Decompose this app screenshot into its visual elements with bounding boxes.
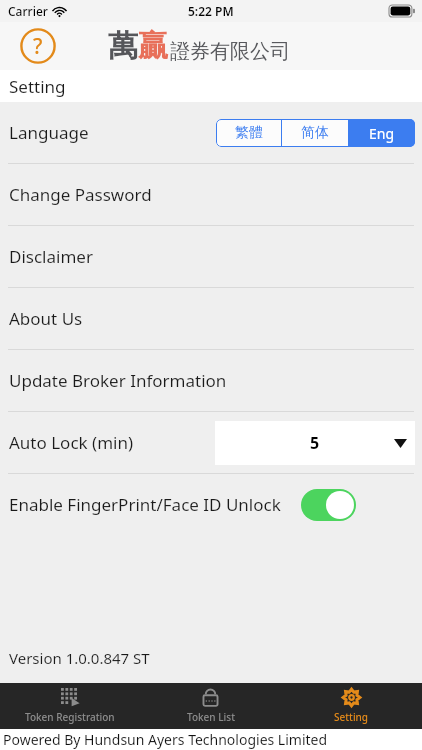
button[interactable]: Setting — [281, 683, 422, 729]
staticText: 繁體 — [235, 124, 263, 142]
staticText: Disclaimer — [9, 245, 93, 268]
staticText: Token List — [187, 710, 235, 724]
button[interactable]: 简体 — [282, 119, 348, 147]
button[interactable]: 5 — [215, 421, 415, 465]
staticText: 贏 — [138, 27, 168, 65]
button[interactable]: 繁體 — [216, 119, 281, 147]
staticText: 简体 — [301, 124, 329, 142]
staticText: 萬 — [108, 27, 138, 65]
staticText: Version 1.0.0.847 ST — [9, 648, 150, 668]
staticText: Token Registration — [25, 710, 115, 724]
staticText: Eng — [369, 124, 395, 143]
staticText: Setting — [334, 710, 369, 724]
staticText: 5 — [310, 432, 320, 454]
staticText: Powered By Hundsun Ayers Technologies Li… — [3, 730, 328, 749]
staticText: Carrier — [8, 3, 48, 19]
staticText: About Us — [9, 307, 83, 330]
button[interactable]: Token Registration — [0, 683, 140, 729]
staticText: Auto Lock (min) — [9, 431, 134, 454]
staticText: ? — [33, 32, 43, 61]
button[interactable]: Disclaimer — [0, 226, 422, 287]
staticText: 5:22 PM — [188, 3, 234, 19]
button[interactable]: Help — [20, 28, 56, 64]
staticText: Change Password — [9, 183, 152, 206]
staticText: 證券有限公司 — [170, 39, 290, 64]
staticText: Language — [9, 121, 89, 144]
button[interactable]: Update Broker Information — [0, 350, 422, 411]
button[interactable]: About Us — [0, 288, 422, 349]
staticText: Setting — [9, 75, 66, 98]
staticText: Update Broker Information — [9, 369, 227, 392]
button[interactable]: Change Password — [0, 164, 422, 225]
button[interactable]: Enable FingerPrint or Face ID Unlock — [301, 489, 356, 521]
staticText: Enable FingerPrint/Face ID Unlock — [9, 493, 281, 516]
button[interactable]: Token List — [140, 683, 281, 729]
button[interactable]: Eng — [349, 119, 415, 147]
